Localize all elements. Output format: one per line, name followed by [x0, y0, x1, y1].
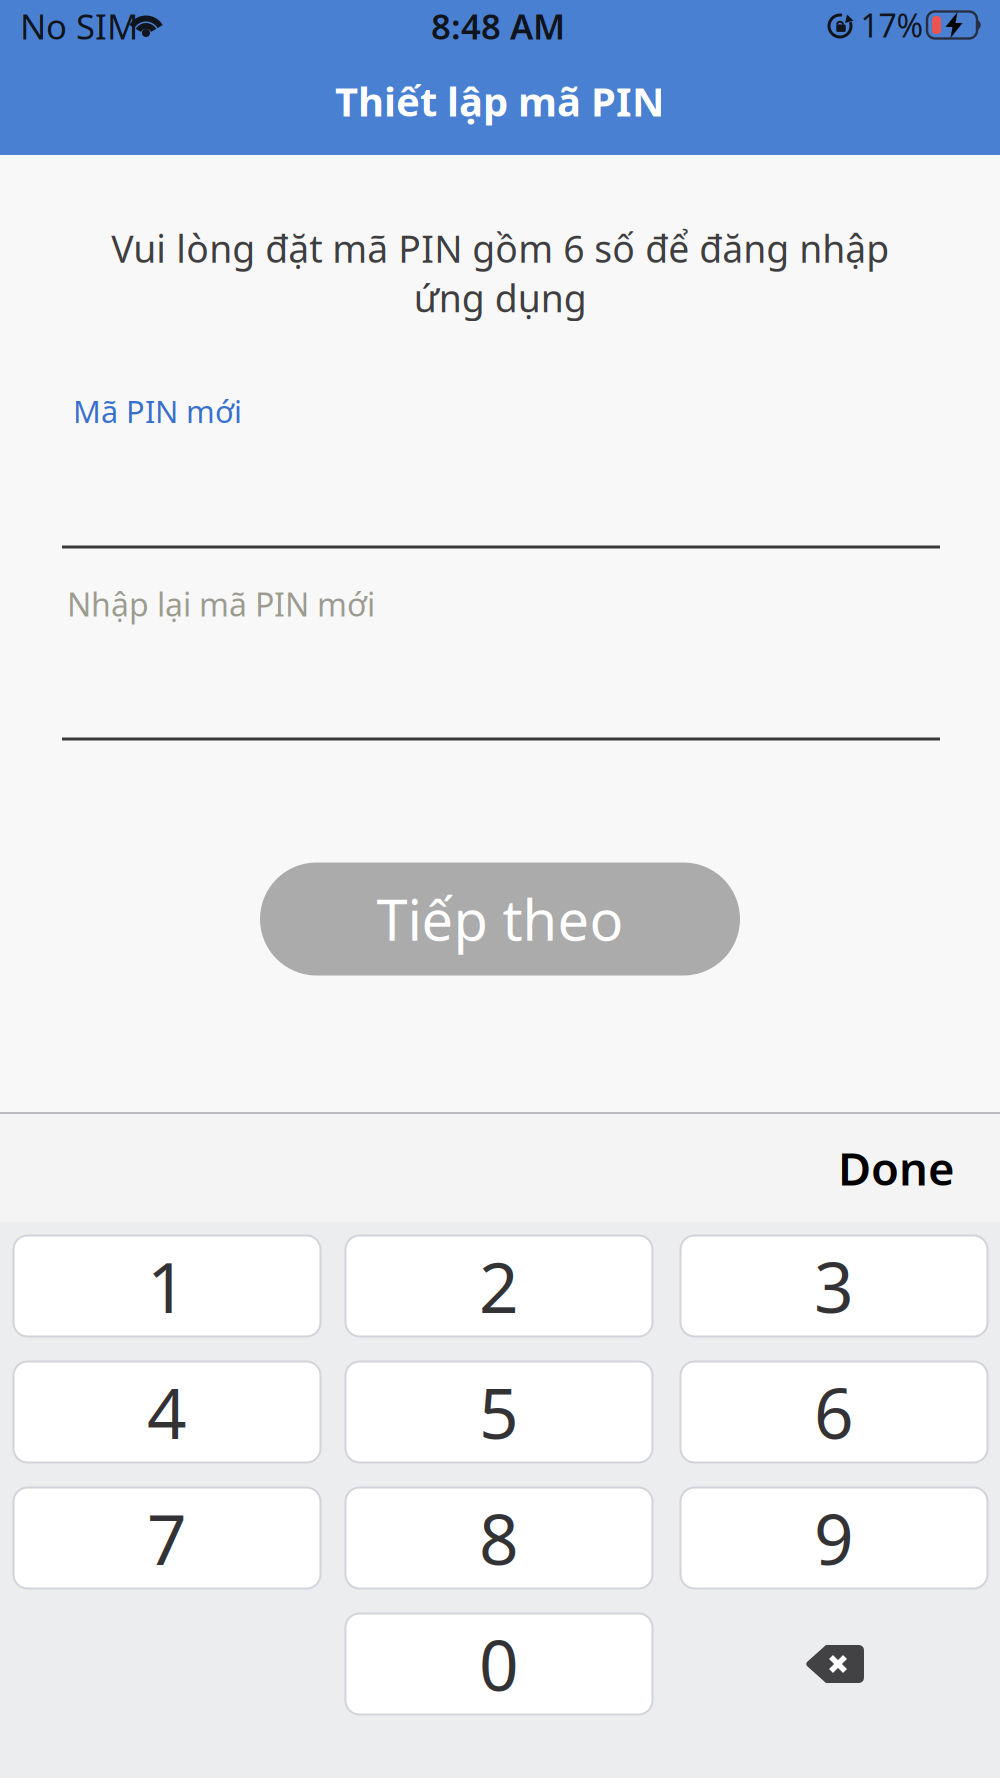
staticText: 5: [479, 1366, 519, 1458]
staticText: Nhập lại mã PIN mới: [67, 583, 375, 625]
button[interactable]: Done: [655, 1138, 955, 1198]
staticText: 4: [147, 1366, 187, 1458]
button[interactable]: 2: [345, 1235, 652, 1336]
staticText: 6: [814, 1366, 854, 1458]
staticText: 17%: [860, 4, 923, 46]
button[interactable]: 0: [345, 1613, 652, 1714]
button[interactable]: Delete: [804, 1645, 864, 1683]
staticText: Mã PIN mới: [73, 391, 242, 431]
staticText: Done: [838, 1138, 955, 1198]
staticText: 8: [479, 1492, 519, 1584]
button[interactable]: 4: [13, 1361, 320, 1462]
button[interactable]: 5: [345, 1361, 652, 1462]
staticText: Thiết lập mã PIN: [335, 74, 665, 127]
staticText: No SIM: [20, 3, 138, 49]
staticText: 1: [147, 1240, 187, 1332]
button[interactable]: 3: [680, 1235, 987, 1336]
button[interactable]: 9: [680, 1487, 987, 1588]
staticText: Tiếp theo: [376, 882, 623, 956]
button[interactable]: Tiếp theo: [260, 862, 740, 975]
staticText: 3: [814, 1240, 854, 1332]
button[interactable]: 8: [345, 1487, 652, 1588]
button[interactable]: 1: [13, 1235, 320, 1336]
button[interactable]: 7: [13, 1487, 320, 1588]
textField[interactable]: Nhập lại mã PIN mới: [67, 583, 945, 625]
staticText: 2: [479, 1240, 519, 1332]
staticText: Vui lòng đặt mã PIN gồm 6 số để đăng nhậ…: [111, 223, 889, 323]
staticText: 0: [479, 1618, 519, 1710]
staticText: 9: [814, 1492, 854, 1584]
staticText: 7: [147, 1492, 187, 1584]
button[interactable]: 6: [680, 1361, 987, 1462]
staticText: 8:48 AM: [431, 3, 565, 49]
